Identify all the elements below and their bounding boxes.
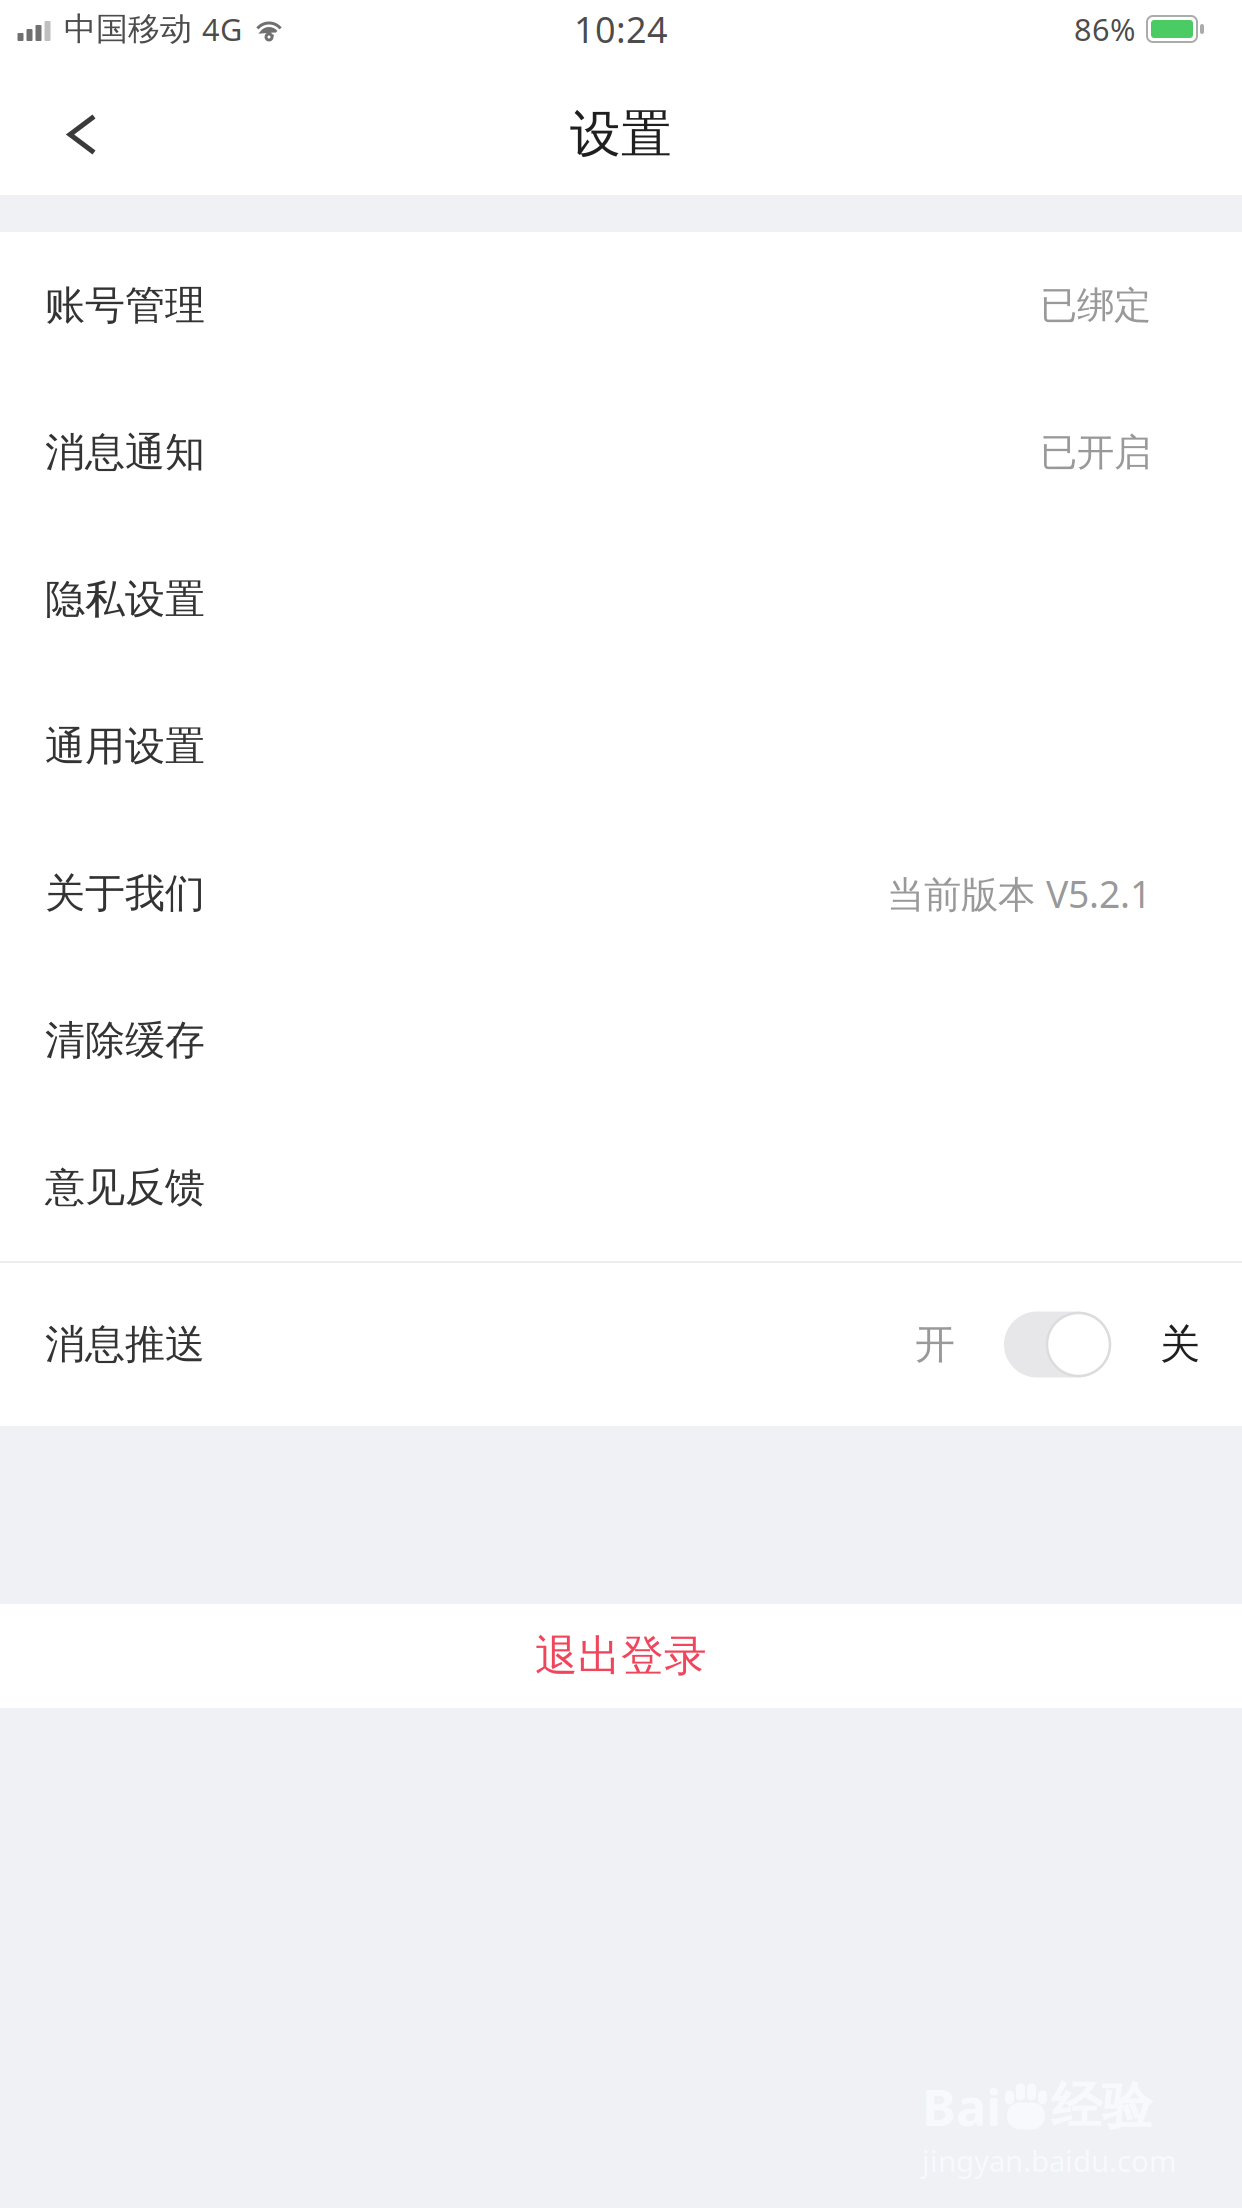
staticText: 4G: [202, 9, 242, 49]
staticText: 中国移动: [54, 9, 202, 49]
staticText: 经验: [1051, 2075, 1153, 2137]
staticText: 账号管理: [45, 281, 205, 330]
button[interactable]: 消息推送开关: [955, 1311, 1160, 1377]
staticText: 10:24: [574, 5, 668, 53]
button[interactable]: 消息通知: [0, 379, 1242, 526]
button[interactable]: 账号管理: [0, 232, 1242, 379]
staticText: 设置: [570, 103, 672, 166]
staticText: 消息推送: [45, 1320, 205, 1369]
staticText: 关: [1160, 1320, 1200, 1369]
staticText: 清除缓存: [45, 1016, 205, 1065]
button[interactable]: 隐私设置: [0, 526, 1242, 673]
staticText: 消息通知: [45, 428, 205, 477]
staticText: 退出登录: [535, 1630, 707, 1682]
button[interactable]: 返回: [36, 86, 132, 182]
staticText: Bai: [922, 2073, 1001, 2140]
staticText: 当前版本 V5.2.1: [887, 869, 1151, 918]
staticText: 隐私设置: [45, 575, 205, 624]
staticText: 86%: [1074, 9, 1135, 49]
staticText: 通用设置: [45, 722, 205, 771]
button[interactable]: 意见反馈: [0, 1114, 1242, 1261]
staticText: 关于我们: [45, 869, 205, 918]
staticText: 意见反馈: [45, 1163, 205, 1212]
staticText: 已绑定: [1040, 283, 1151, 328]
staticText: 已开启: [1040, 430, 1151, 475]
button[interactable]: 关于我们: [0, 820, 1242, 967]
button[interactable]: 退出登录: [0, 1604, 1242, 1708]
staticText: 开: [915, 1320, 955, 1369]
button[interactable]: 通用设置: [0, 673, 1242, 820]
button[interactable]: 清除缓存: [0, 967, 1242, 1114]
